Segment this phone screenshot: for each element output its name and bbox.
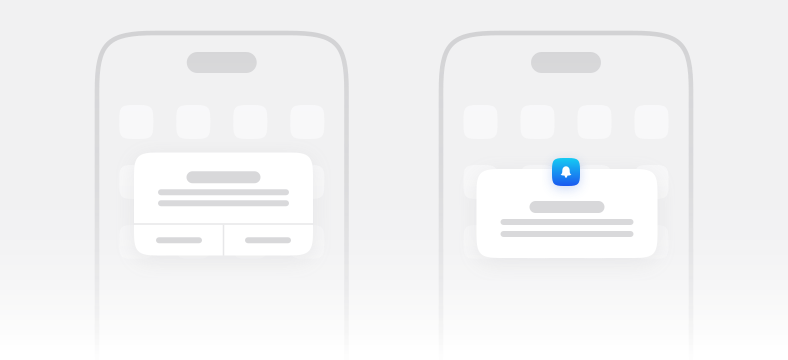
button[interactable] <box>476 169 657 258</box>
button[interactable] <box>134 152 313 255</box>
button[interactable]: Notifications <box>552 158 580 186</box>
button[interactable]: Don’t Allow <box>135 225 223 256</box>
button[interactable]: Allow <box>224 225 312 256</box>
